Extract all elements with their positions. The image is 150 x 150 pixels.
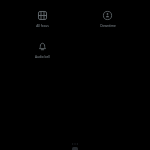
staticText: All focus	[36, 24, 49, 28]
button[interactable]: All focus	[10, 11, 75, 28]
staticText: Downtime	[100, 24, 116, 28]
button[interactable]: Audio bell	[10, 42, 75, 59]
button[interactable]: Downtime	[75, 11, 140, 28]
button[interactable]: Show more modes	[72, 147, 78, 150]
staticText: Audio bell	[35, 55, 50, 59]
